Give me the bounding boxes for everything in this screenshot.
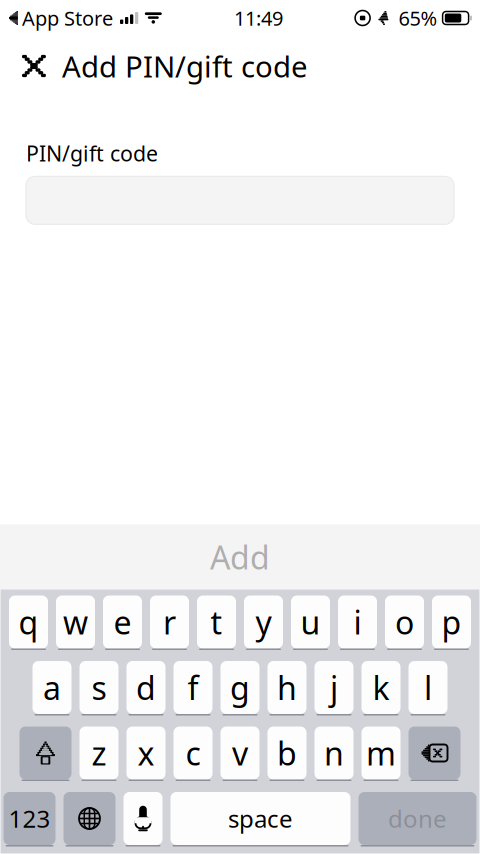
button[interactable]: done: [358, 792, 476, 846]
staticText: App Store: [22, 5, 113, 31]
button[interactable]: x: [126, 726, 165, 781]
staticText: k: [372, 666, 389, 709]
button[interactable]: Shift: [19, 726, 71, 781]
button[interactable]: e: [103, 595, 142, 650]
button[interactable]: y: [244, 595, 283, 650]
staticText: q: [18, 601, 38, 643]
staticText: o: [395, 601, 414, 643]
button[interactable]: n: [314, 726, 353, 781]
staticText: Add: [210, 536, 270, 578]
button[interactable]: 123: [3, 792, 55, 846]
button[interactable]: k: [361, 661, 400, 715]
staticText: PIN/gift code: [26, 139, 158, 167]
button[interactable]: s: [79, 661, 118, 715]
button[interactable]: f: [173, 661, 212, 715]
staticText: d: [136, 666, 156, 709]
button[interactable]: a: [32, 661, 71, 715]
staticText: r: [163, 601, 176, 643]
staticText: i: [353, 601, 361, 643]
staticText: l: [424, 666, 432, 709]
button[interactable]: g: [220, 661, 259, 715]
button[interactable]: Close: [12, 43, 58, 89]
staticText: z: [91, 732, 106, 774]
button[interactable]: Dictation: [123, 792, 162, 846]
staticText: space: [228, 803, 293, 834]
button[interactable]: b: [267, 726, 306, 781]
button[interactable]: space: [170, 792, 350, 846]
button[interactable]: r: [150, 595, 189, 650]
button[interactable]: q: [9, 595, 48, 650]
staticText: v: [232, 732, 248, 774]
staticText: y: [255, 601, 271, 643]
button[interactable]: w: [56, 595, 95, 650]
staticText: b: [277, 732, 297, 774]
button[interactable]: p: [432, 595, 471, 650]
staticText: j: [330, 666, 338, 709]
staticText: m: [366, 732, 396, 774]
staticText: Add PIN/gift code: [62, 46, 308, 85]
staticText: s: [91, 666, 106, 709]
staticText: g: [230, 666, 250, 709]
staticText: done: [388, 803, 447, 834]
staticText: w: [63, 601, 88, 643]
staticText: 65%: [399, 5, 438, 31]
staticText: u: [300, 601, 320, 643]
button[interactable]: c: [173, 726, 212, 781]
staticText: h: [277, 666, 297, 709]
button[interactable]: h: [267, 661, 306, 715]
button[interactable]: Next keyboard: [63, 792, 115, 846]
staticText: x: [137, 732, 154, 774]
staticText: t: [210, 601, 222, 643]
staticText: f: [187, 666, 198, 709]
button[interactable]: o: [385, 595, 424, 650]
button[interactable]: Add: [0, 524, 480, 589]
button[interactable]: u: [291, 595, 330, 650]
button[interactable]: j: [314, 661, 353, 715]
staticText: 11:49: [234, 5, 283, 31]
button[interactable]: z: [79, 726, 118, 781]
staticText: e: [113, 601, 131, 643]
button[interactable]: i: [338, 595, 377, 650]
staticText: 123: [8, 803, 50, 834]
button[interactable]: v: [220, 726, 259, 781]
button[interactable]: Delete: [408, 726, 460, 781]
button[interactable]: t: [197, 595, 236, 650]
button[interactable]: d: [126, 661, 165, 715]
staticText: n: [324, 732, 344, 774]
staticText: c: [185, 732, 200, 774]
button[interactable]: m: [361, 726, 400, 781]
button[interactable]: l: [408, 661, 447, 715]
staticText: a: [43, 666, 61, 709]
staticText: p: [441, 601, 461, 643]
